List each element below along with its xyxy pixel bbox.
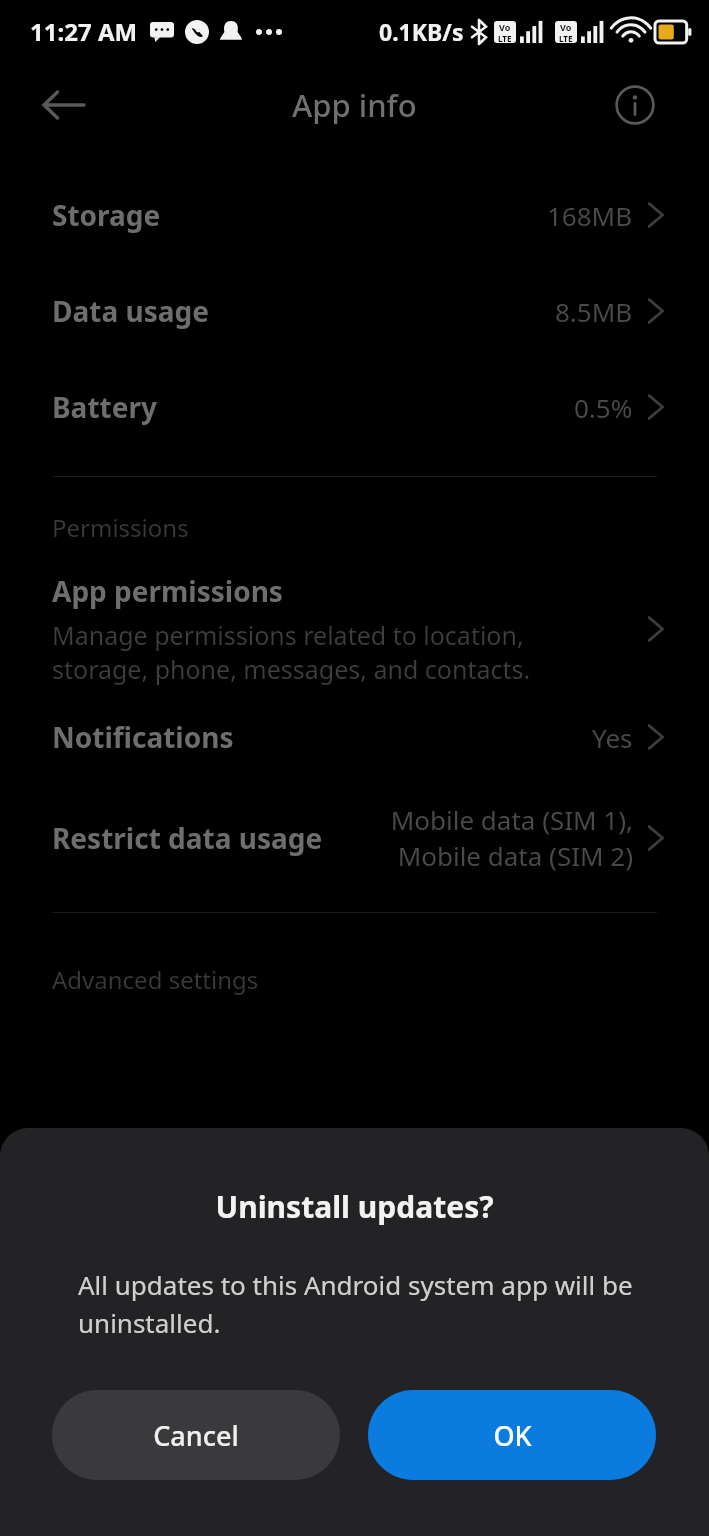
staticText: App info (292, 84, 417, 126)
staticText: Storage (52, 196, 161, 234)
button[interactable]: OK (368, 1390, 656, 1480)
staticText: Yes (592, 720, 633, 755)
staticText: Permissions (52, 511, 189, 544)
button[interactable]: Restrict data usage (0, 798, 709, 878)
staticText: 0.1KB/s (379, 16, 464, 47)
staticText: LTE (498, 33, 512, 43)
button[interactable]: App permissions (0, 568, 709, 690)
staticText: Battery (52, 388, 157, 426)
button[interactable]: Data usage (0, 286, 709, 336)
staticText: Notifications (52, 718, 234, 756)
button[interactable]: Notifications (0, 712, 709, 762)
staticText: Restrict data usage (52, 819, 323, 857)
staticText: Vo (560, 21, 572, 33)
staticText: Vo (499, 21, 511, 33)
staticText: 8.5MB (555, 294, 633, 329)
staticText: LTE (559, 33, 573, 43)
button[interactable]: App details (609, 79, 661, 131)
staticText: All updates to this Android system app w… (78, 1267, 649, 1340)
staticText: Advanced settings (52, 963, 259, 996)
button[interactable]: Storage (0, 190, 709, 240)
button[interactable]: Battery (0, 382, 709, 432)
button[interactable]: Cancel (52, 1390, 340, 1480)
button[interactable]: Back (36, 77, 92, 133)
staticText: Uninstall updates? (0, 1186, 709, 1227)
staticText: 11:27 AM (30, 15, 138, 48)
staticText: Manage permissions related to location, … (52, 618, 597, 686)
staticText: App permissions (52, 572, 283, 610)
staticText: Mobile data (SIM 1), Mobile data (SIM 2) (390, 802, 633, 874)
staticText: 0.5% (574, 390, 633, 425)
staticText: Data usage (52, 292, 209, 330)
staticText: 168MB (547, 198, 633, 233)
staticText: Cancel (153, 1417, 239, 1454)
staticText: OK (493, 1417, 532, 1454)
